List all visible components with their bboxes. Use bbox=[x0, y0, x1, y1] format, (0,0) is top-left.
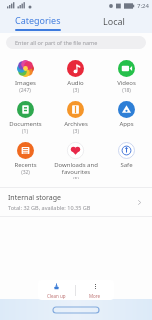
button[interactable]: Clean up bbox=[38, 280, 75, 300]
button[interactable]: Documents bbox=[0, 97, 50, 138]
staticText: (5) bbox=[73, 176, 79, 179]
button[interactable]: Downloads and favourites bbox=[50, 138, 101, 179]
staticText: Local bbox=[103, 15, 125, 27]
button[interactable]: Videos bbox=[101, 56, 152, 97]
button[interactable]: Images bbox=[0, 56, 50, 97]
staticText: (3) bbox=[73, 87, 79, 94]
staticText: Clean up bbox=[47, 293, 66, 299]
staticText: (247) bbox=[19, 87, 31, 94]
staticText: Safe bbox=[120, 161, 133, 169]
staticText: Videos bbox=[117, 79, 136, 87]
button[interactable]: More bbox=[76, 280, 114, 300]
button[interactable]: Categories bbox=[0, 12, 76, 33]
button[interactable]: Safe bbox=[101, 138, 152, 179]
button[interactable]: Internal storage bbox=[0, 188, 152, 216]
other: Open internal storage bbox=[135, 198, 144, 207]
staticText: 7:24 bbox=[137, 2, 149, 10]
staticText: Enter all or part of the file name bbox=[15, 39, 98, 46]
staticText: Archives bbox=[64, 120, 88, 128]
staticText: Categories bbox=[15, 14, 61, 26]
staticText: Recents bbox=[14, 161, 37, 169]
button[interactable]: Recents bbox=[0, 138, 50, 179]
staticText: Apps bbox=[119, 120, 134, 128]
staticText: (3) bbox=[73, 128, 79, 135]
staticText: Total: 32 GB, available: 10.35 GB bbox=[8, 204, 91, 211]
button[interactable]: Archives bbox=[50, 97, 101, 138]
staticText: Internal storage bbox=[8, 193, 61, 203]
staticText: (32) bbox=[21, 169, 30, 176]
staticText: More bbox=[89, 293, 101, 299]
staticText: Downloads and favourites bbox=[54, 161, 98, 176]
staticText: Images bbox=[15, 79, 36, 87]
staticText: Audio bbox=[67, 79, 84, 87]
staticText: Documents bbox=[9, 120, 42, 128]
staticText: (1) bbox=[22, 128, 28, 135]
staticText: (18) bbox=[122, 87, 131, 94]
button[interactable]: Audio bbox=[50, 56, 101, 97]
button[interactable]: Apps bbox=[101, 97, 152, 138]
button[interactable]: Enter all or part of the file name bbox=[6, 36, 146, 49]
button[interactable]: Local bbox=[76, 12, 152, 33]
